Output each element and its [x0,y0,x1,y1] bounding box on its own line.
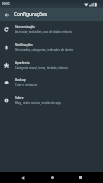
button[interactable]: Recentes [70,172,90,183]
button[interactable]: Início [42,172,62,183]
button[interactable]: Aparência [0,56,103,74]
staticText: Sincronização [15,25,35,29]
staticText: Configurações [14,11,48,18]
button[interactable]: Sobre [0,91,103,109]
staticText: Criar e restaurar [15,83,38,87]
button[interactable]: Voltar [0,8,14,21]
button[interactable]: Sincronização [0,21,103,38]
staticText: Ao iniciar, exclusões, uso de dados móve… [15,30,72,34]
staticText: Categoria visual, tema, teclado, idioma [15,66,68,70]
staticText: 09:00 [2,2,10,6]
staticText: Notificações [15,43,33,47]
button[interactable]: Notificações [0,38,103,56]
staticText: Backup [15,78,26,82]
staticText: Aparência [15,61,30,65]
button[interactable]: Backup [0,74,103,91]
staticText: Sobre [15,96,24,100]
staticText: Blog, redes sociais, versão do app [15,101,61,105]
staticText: Silenciadas, categorias, indicador de al… [15,48,73,52]
button[interactable]: Voltar [13,172,33,183]
